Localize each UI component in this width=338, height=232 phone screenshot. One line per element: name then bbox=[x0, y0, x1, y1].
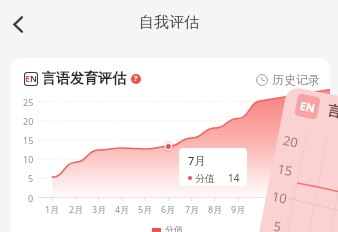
button[interactable]: Back bbox=[3, 9, 33, 39]
staticText: 7月 bbox=[185, 203, 200, 215]
staticText: 14 bbox=[228, 171, 240, 185]
staticText: 5 bbox=[28, 172, 34, 184]
staticText: E bbox=[25, 73, 30, 85]
staticText: 5月 bbox=[138, 203, 153, 215]
staticText: 分值 bbox=[165, 224, 183, 232]
staticText: 言语发育评估 bbox=[42, 70, 126, 88]
staticText: 20 bbox=[23, 115, 34, 127]
staticText: 15 bbox=[276, 160, 294, 180]
staticText: 20 bbox=[281, 131, 300, 152]
staticText: 4月 bbox=[115, 203, 130, 215]
button[interactable]: 历史记录 bbox=[256, 72, 320, 87]
staticText: 历史记录 bbox=[272, 72, 320, 87]
staticText: 15 bbox=[23, 134, 34, 146]
staticText: 3月 bbox=[92, 203, 107, 215]
staticText: 2月 bbox=[69, 203, 84, 215]
staticText: 0 bbox=[28, 192, 34, 204]
staticText: 分值 bbox=[195, 172, 215, 185]
button[interactable]: Help bbox=[131, 74, 141, 84]
staticText: 自我评估 bbox=[139, 13, 199, 32]
staticText: 5 bbox=[272, 217, 283, 232]
staticText: 25 bbox=[23, 96, 34, 108]
staticText: N bbox=[30, 73, 37, 85]
staticText: 9月 bbox=[231, 203, 246, 215]
staticText: ? bbox=[134, 74, 138, 84]
staticText: 8月 bbox=[208, 203, 223, 215]
staticText: 言语发育评估 bbox=[326, 102, 338, 136]
staticText: 7月 bbox=[188, 153, 206, 168]
staticText: EN bbox=[299, 98, 317, 115]
staticText: 10 bbox=[270, 187, 289, 208]
staticText: 10 bbox=[23, 153, 34, 165]
staticText: 1月 bbox=[45, 203, 60, 215]
staticText: 6月 bbox=[161, 203, 176, 215]
